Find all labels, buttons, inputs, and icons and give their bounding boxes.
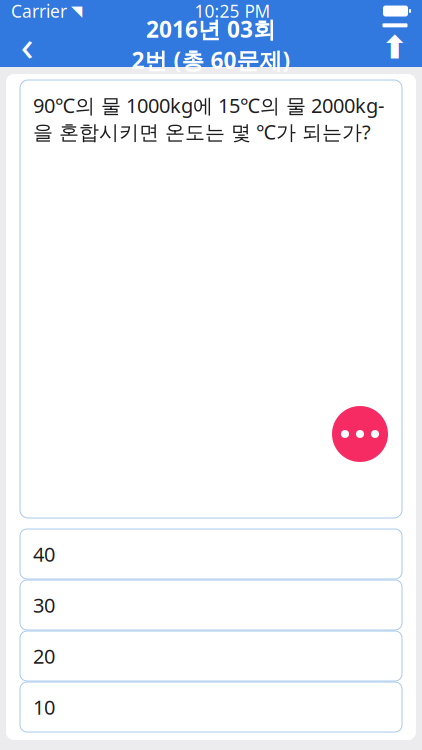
staticText: 2016년 03회 xyxy=(146,14,276,44)
staticText: 10 xyxy=(33,694,55,720)
staticText: 40 xyxy=(33,541,55,567)
staticText: 90℃의 물 1000kg에 15℃의 물 2000kg을 혼합시키면 온도는 … xyxy=(33,92,384,145)
button[interactable]: Back xyxy=(0,22,54,67)
button[interactable]: More options xyxy=(332,406,388,462)
button[interactable]: 40 xyxy=(20,529,402,579)
button[interactable]: Submit answers xyxy=(368,22,422,67)
button[interactable]: 20 xyxy=(20,631,402,681)
staticText: 30 xyxy=(33,592,55,618)
staticText: Carrier xyxy=(11,0,67,22)
staticText: 2번 (총 60문제) xyxy=(131,45,290,75)
staticText: ⬆ xyxy=(381,29,408,66)
staticText: 20 xyxy=(33,643,55,669)
button[interactable]: 10 xyxy=(20,682,402,732)
staticText: ‹ xyxy=(20,16,33,73)
button[interactable]: 30 xyxy=(20,580,402,630)
staticText: ◥ xyxy=(71,3,82,19)
staticText: 10:25 PM xyxy=(194,0,270,22)
